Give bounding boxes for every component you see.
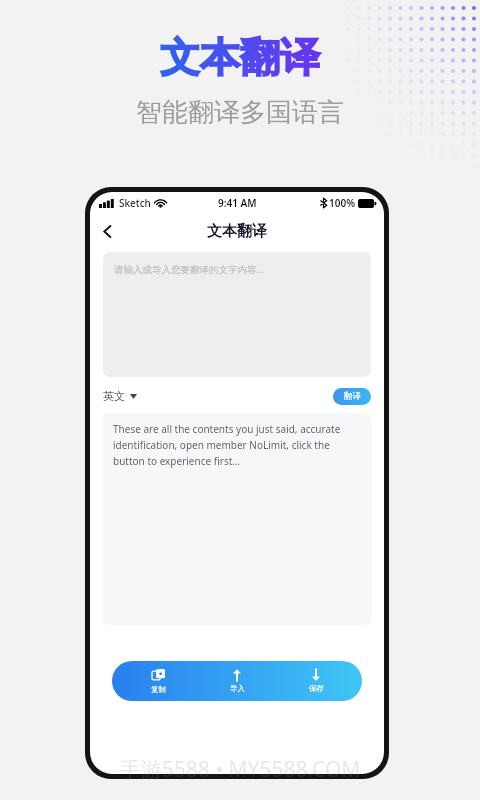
staticText: 复制 (151, 685, 166, 694)
staticText: These are all the contents you just said… (113, 422, 361, 467)
staticText: 手游5588 • MY5588.COM (0, 755, 480, 784)
staticText: 翻译 (344, 391, 361, 402)
button[interactable]: 请输入或导入您要翻译的文字内容… (103, 252, 371, 377)
staticText: 英文 (103, 389, 125, 403)
button[interactable]: Back (90, 214, 124, 248)
staticText: 保存 (309, 684, 324, 693)
button[interactable]: 英文 (103, 389, 137, 403)
staticText: Sketch (119, 196, 151, 210)
button[interactable]: Import (204, 665, 270, 697)
button[interactable]: These are all the contents you just said… (103, 413, 371, 625)
button[interactable]: 翻译 (333, 388, 371, 405)
staticText: 9:41 AM (218, 196, 257, 210)
button[interactable]: Save (283, 665, 349, 697)
button[interactable]: Copy (125, 665, 191, 698)
staticText: 请输入或导入您要翻译的文字内容… (114, 263, 265, 276)
staticText: 文本翻译 (160, 32, 320, 82)
staticText: 文本翻译 (207, 222, 267, 241)
staticText: 导入 (230, 684, 245, 693)
staticText: 智能翻译多国语言 (136, 96, 344, 129)
staticText: 100% (329, 196, 355, 210)
